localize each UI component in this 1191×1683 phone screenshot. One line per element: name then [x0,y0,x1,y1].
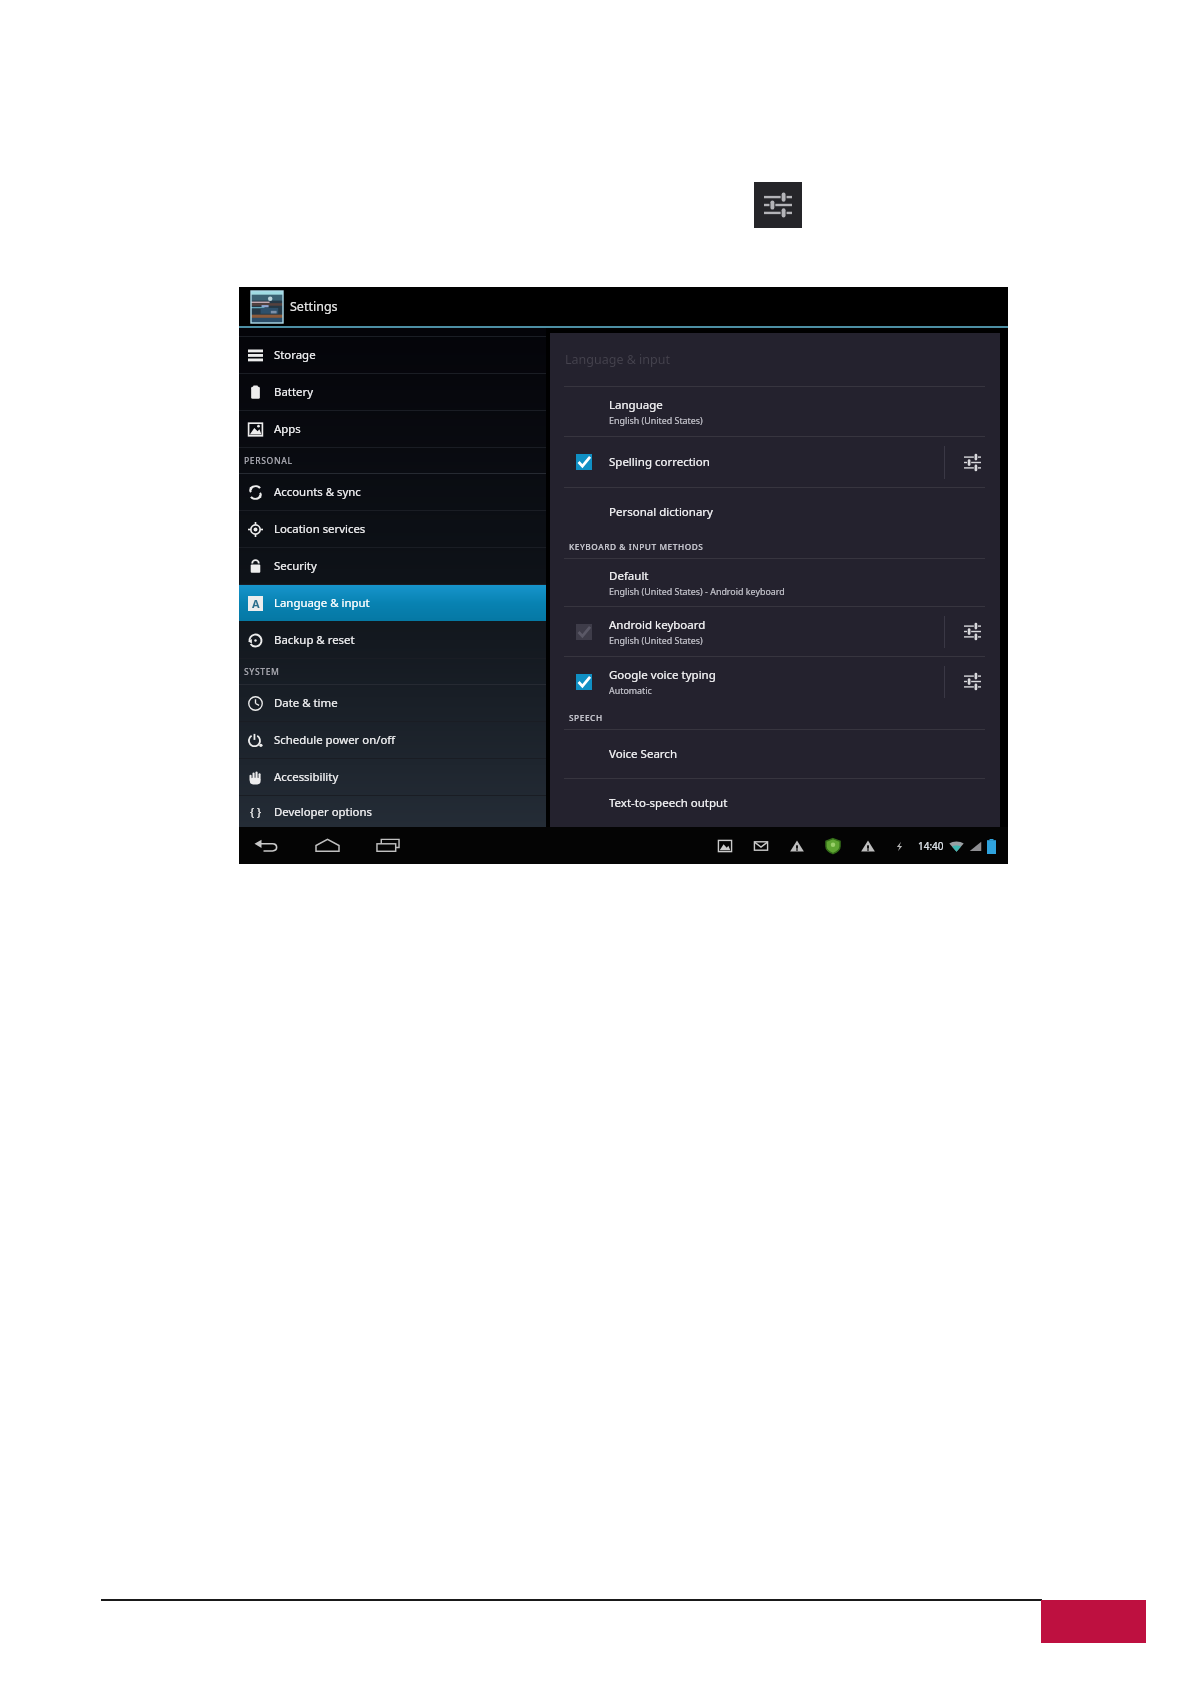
staticText: Settings [290,298,338,315]
button[interactable]: Google voice typing [550,657,1000,706]
button[interactable]: Android keyboard [550,607,1000,656]
staticText: Personal dictionary [609,504,713,520]
button[interactable]: Storage [239,337,546,373]
staticText: Android keyboard [609,617,706,633]
button[interactable]: Settings for Google voice typing [945,657,1000,706]
staticText: Voice Search [609,746,677,762]
staticText: PERSONAL [244,455,293,467]
button[interactable]: Voice Search [550,730,1000,778]
button[interactable]: A [239,585,546,621]
button[interactable]: Text-to-speech output [550,779,1000,827]
button[interactable]: Location services [239,511,546,547]
button[interactable]: Settings [239,287,352,326]
staticText: Storage [274,347,316,363]
staticText: Language & input [274,595,370,611]
staticText: Apps [274,421,301,437]
staticText: Text-to-speech output [609,795,728,811]
staticText: English (United States) [609,634,703,646]
button[interactable]: Back [245,827,287,864]
staticText: English (United States) [609,414,703,426]
staticText: 14:40 [918,839,944,853]
staticText: Language [609,397,663,413]
staticText: Developer options [274,804,372,820]
staticText: A [252,596,260,611]
button[interactable]: { } [239,796,546,827]
button[interactable]: Accessibility [239,759,546,795]
button[interactable]: Language [550,387,1000,436]
staticText: Location services [274,521,366,537]
button[interactable]: Backup & reset [239,622,546,658]
staticText: Date & time [274,695,338,711]
button[interactable]: Recent apps [367,827,409,864]
staticText: KEYBOARD & INPUT METHODS [569,541,704,552]
button[interactable]: Security [239,548,546,584]
staticText: Accounts & sync [274,484,361,500]
staticText: { } [250,804,262,819]
button[interactable]: Home [306,827,348,864]
button[interactable]: Apps [239,411,546,447]
button[interactable]: Default [550,559,1000,606]
button[interactable]: Settings for Spelling correction [945,437,1000,487]
staticText: Google voice typing [609,667,716,683]
button[interactable]: Settings for Android keyboard [945,607,1000,656]
button[interactable]: Schedule power on/off [239,722,546,758]
staticText: Spelling correction [609,454,710,470]
staticText: Language & input [565,351,670,368]
staticText: Accessibility [274,769,339,785]
staticText: Default [609,568,649,584]
staticText: Automatic [609,684,652,696]
button[interactable]: Personal dictionary [550,488,1000,535]
button[interactable]: Battery [239,374,546,410]
staticText: SYSTEM [244,666,280,678]
staticText: English (United States) - Android keyboa… [609,585,785,597]
staticText: Backup & reset [274,632,355,648]
button[interactable]: Accounts & sync [239,474,546,510]
staticText: SPEECH [569,712,603,723]
button[interactable]: Date & time [239,685,546,721]
button[interactable]: Spelling correction [550,437,1000,487]
staticText: Battery [274,384,313,400]
button[interactable]: Input method settings [754,182,802,228]
staticText: Security [274,558,317,574]
staticText: Schedule power on/off [274,732,396,748]
